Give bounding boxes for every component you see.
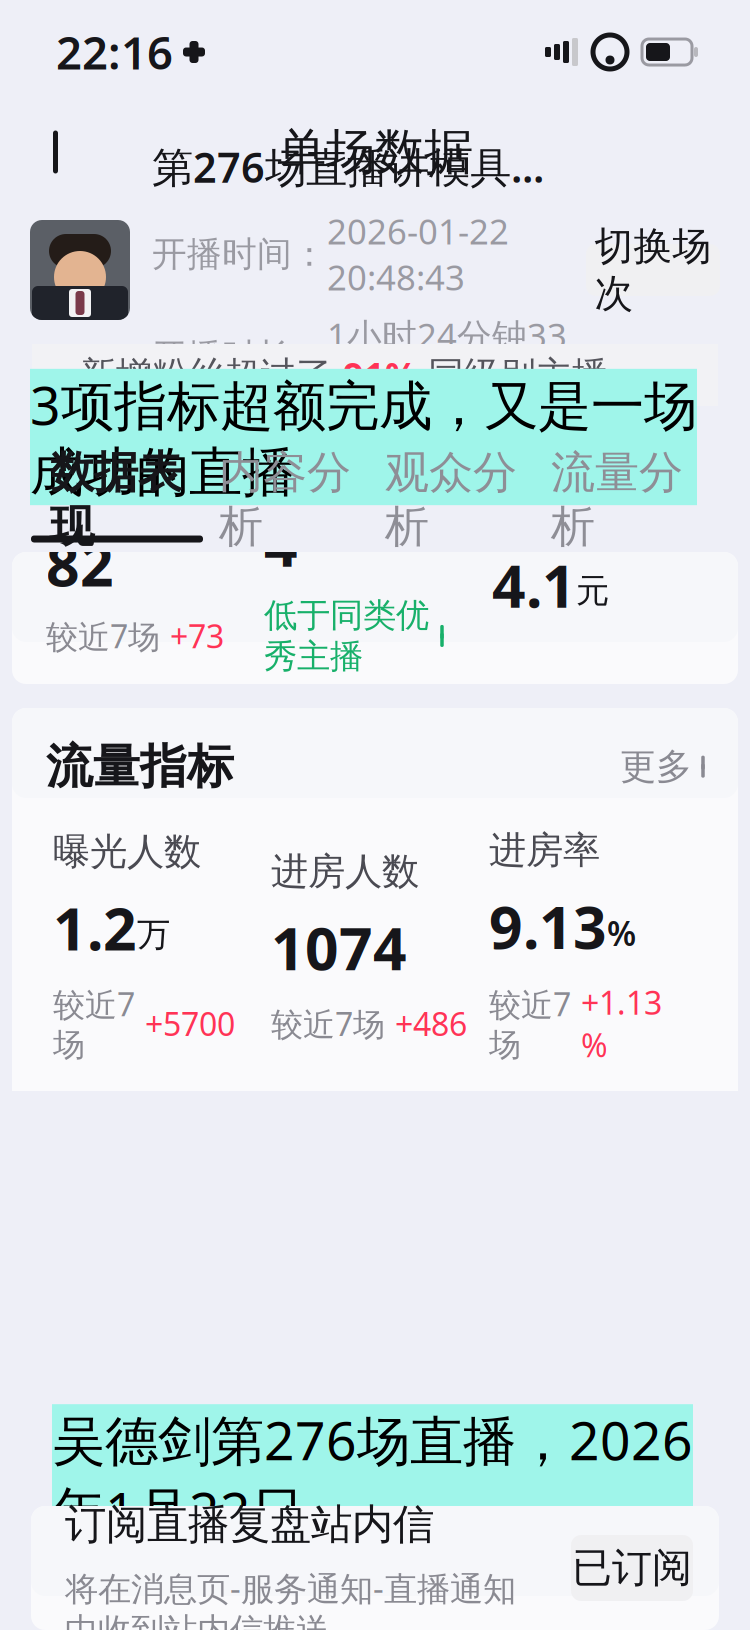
staticText: 3项指标超额完成，又是一场成功的直播 — [30, 369, 697, 505]
staticText: 评论人数 — [53, 1543, 201, 1589]
staticText: 流量分析 — [551, 445, 683, 554]
staticText: 40 — [53, 1603, 121, 1630]
button[interactable]: 数据表现 — [30, 469, 202, 529]
staticText: +73 — [170, 615, 224, 657]
staticText: 1074 — [271, 908, 407, 986]
staticText: 元 — [576, 570, 609, 611]
staticText: 切换场次 — [594, 222, 711, 317]
staticText: 更多 — [620, 745, 692, 789]
button[interactable]: 内容分析 — [202, 469, 368, 529]
staticText: 评论率 — [271, 1521, 382, 1567]
button[interactable]: AI经纪人 — [238, 1428, 498, 1500]
staticText: 点赞次数 — [489, 1523, 637, 1569]
staticText: 观众分析 — [385, 445, 517, 554]
staticText: +486 — [395, 1002, 467, 1045]
button[interactable]: 返回 — [20, 112, 100, 192]
staticText: 1小时24分钟33秒 — [327, 312, 567, 401]
staticText: 2026-01-22 20:48:43 — [327, 208, 509, 300]
staticText: 进房率 — [489, 827, 600, 873]
staticText: 1.2 — [53, 889, 137, 967]
staticText: AI经纪人 — [312, 1437, 472, 1491]
staticText: 第276场直播讲模具... — [152, 139, 544, 194]
button[interactable]: 已订阅 — [571, 1535, 693, 1601]
staticText: 流量指标 — [46, 738, 234, 795]
staticText: 进房人数 — [271, 849, 419, 894]
staticText: 将在消息页-服务通知-直播通知中收到站内信推送 — [65, 1566, 516, 1630]
staticText: 较近7场 — [46, 615, 160, 657]
staticText: 9.13 — [489, 887, 607, 965]
staticText: 吴德剑第276场直播，2026年1月22日 — [52, 1404, 693, 1546]
staticText: 较近7场 — [53, 983, 135, 1064]
staticText: 较近7场 — [489, 983, 571, 1064]
staticText: 低于同类优秀主播 — [264, 595, 429, 677]
staticText: 曝光人数 — [53, 829, 201, 875]
staticText: 22:16 — [56, 22, 173, 82]
staticText: 2465 — [489, 1583, 625, 1630]
staticText: 4.1 — [492, 546, 576, 624]
staticText: 同级别主播 — [417, 353, 608, 397]
staticText: 单场数据 — [277, 122, 473, 182]
button[interactable]: 更多 — [620, 1439, 710, 1483]
staticText: 订阅直播复盘站内信 — [65, 1499, 434, 1550]
staticText: 内容分析 — [219, 445, 351, 554]
button[interactable]: 切换场次 — [586, 244, 720, 296]
staticText: 开播时间： — [152, 233, 327, 275]
staticText: 开播时长： — [152, 335, 327, 378]
button[interactable]: 观众分析 — [368, 469, 534, 529]
staticText: 4 — [264, 505, 298, 583]
staticText: % — [607, 911, 636, 955]
staticText: +1.13% — [581, 981, 662, 1066]
button[interactable]: 低于同类优秀主播 — [264, 595, 492, 677]
staticText: 较近7场 — [271, 1002, 385, 1045]
staticText: 数据表现 — [50, 445, 182, 554]
staticText: 互动指标 — [46, 1432, 234, 1489]
staticText: 3.72 — [271, 1581, 389, 1630]
staticText: 91% — [343, 351, 417, 399]
staticText: 已订阅 — [572, 1543, 692, 1592]
button[interactable]: 流量分析 — [534, 469, 700, 529]
staticText: 新增粉丝超过了 — [80, 353, 343, 397]
staticText: 更多 — [620, 1439, 692, 1483]
staticText: 万 — [137, 914, 170, 955]
staticText: 82 — [46, 525, 114, 603]
button[interactable]: 更多 — [620, 745, 710, 789]
staticText: +5700 — [145, 1002, 235, 1045]
